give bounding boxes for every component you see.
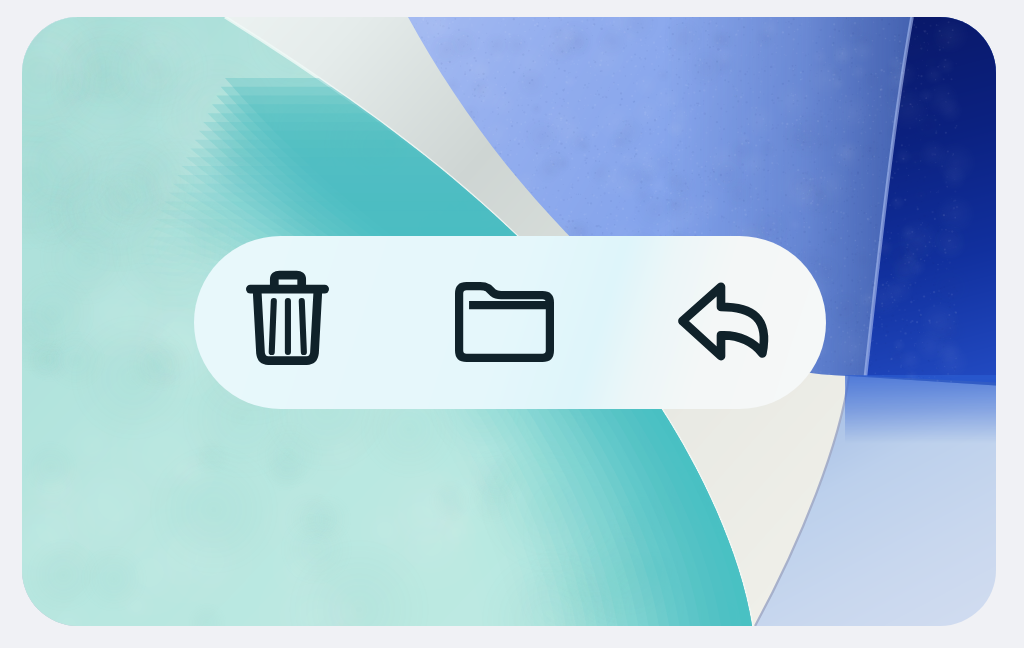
button[interactable]: Move to folder: [455, 236, 554, 408]
button[interactable]: Delete: [246, 236, 329, 405]
button[interactable]: Reply: [677, 236, 771, 408]
